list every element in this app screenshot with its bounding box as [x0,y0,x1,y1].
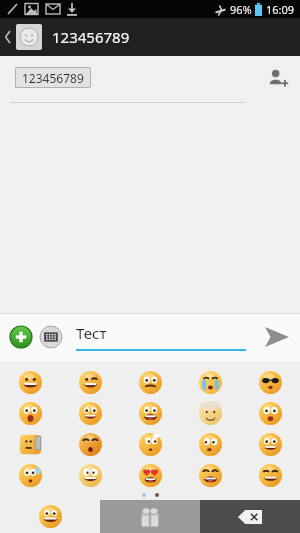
button[interactable]: Add attachment [8,324,34,350]
staticText: 123456789 [52,27,130,47]
button[interactable]: Emoji [60,429,120,460]
button[interactable]: Emoji [180,460,240,491]
button[interactable]: Emoji [120,367,180,398]
button[interactable]: Emoji [180,367,240,398]
button[interactable]: Emoji [240,460,300,491]
button[interactable]: Emoji [240,398,300,429]
button[interactable]: Emoji [0,500,100,533]
button[interactable]: Emoji [180,398,240,429]
button[interactable]: Send [260,320,294,354]
button[interactable]: 123456789 [15,67,91,88]
button[interactable]: Emoji [240,367,300,398]
button[interactable]: Add recipient [264,65,290,91]
button[interactable]: Emoji [120,398,180,429]
staticText: 123456789 [22,70,84,86]
staticText: 16:09 [266,2,295,17]
button[interactable]: Emoji [180,429,240,460]
button[interactable]: Gift [100,500,200,533]
button[interactable]: Contact photo [16,24,42,50]
button[interactable]: Emoji [60,460,120,491]
button[interactable]: Emoji [0,367,60,398]
button[interactable]: Emoji [0,398,60,429]
staticText: Тест [76,323,107,343]
button[interactable]: Keyboard [38,324,64,350]
button[interactable]: Emoji [0,429,60,460]
button[interactable]: Backspace [200,500,300,533]
button[interactable]: Emoji [240,429,300,460]
button[interactable]: Back [0,18,16,56]
button[interactable]: Emoji [60,367,120,398]
button[interactable]: Emoji [0,460,60,491]
button[interactable]: Emoji [120,460,180,491]
button[interactable]: Emoji [60,398,120,429]
staticText: 96% [230,2,252,17]
button[interactable]: Emoji [120,429,180,460]
